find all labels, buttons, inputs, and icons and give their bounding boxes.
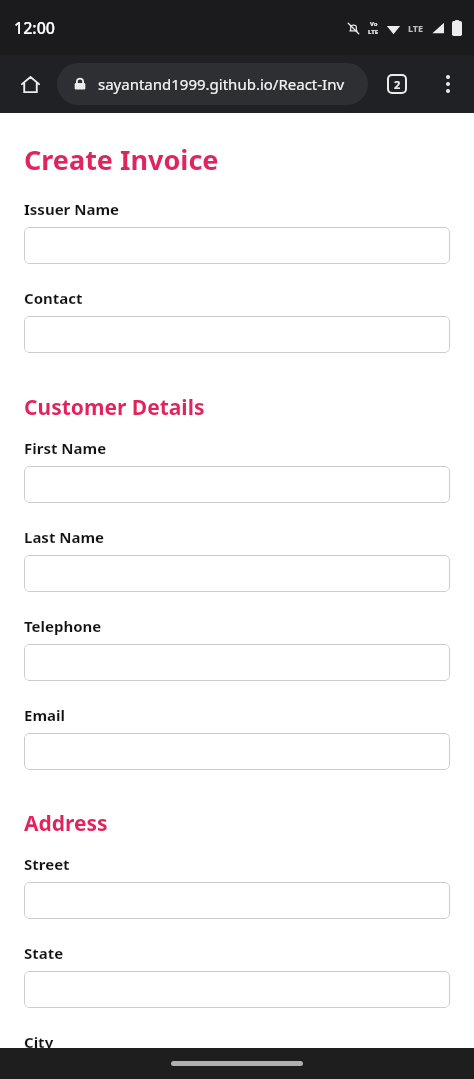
staticText: LTE [368, 28, 379, 36]
staticText: Email [24, 705, 65, 725]
button[interactable] [24, 316, 450, 353]
staticText: Last Name [24, 527, 105, 547]
staticText: Customer Details [24, 393, 205, 422]
staticText: LTE [408, 22, 424, 34]
button[interactable]: More options [428, 64, 468, 104]
button[interactable]: sayantand1999.github.io/React-Inv [57, 63, 368, 105]
staticText: State [24, 943, 64, 963]
button[interactable] [24, 555, 450, 592]
staticText: Street [24, 854, 70, 874]
button[interactable]: Tabs, 2 open [378, 65, 416, 103]
staticText: Vo [370, 20, 378, 28]
staticText: Telephone [24, 616, 102, 636]
staticText: Address [24, 809, 108, 838]
button[interactable] [24, 882, 450, 919]
staticText: First Name [24, 438, 107, 458]
button[interactable]: Home [10, 64, 50, 104]
staticText: Contact [24, 288, 83, 308]
button[interactable] [24, 971, 450, 1008]
staticText: sayantand1999.github.io/React-Inv [98, 74, 345, 94]
button[interactable] [24, 644, 450, 681]
staticText: Create Invoice [24, 141, 219, 178]
staticText: 12:00 [14, 17, 55, 39]
button[interactable] [24, 227, 450, 264]
staticText: City [24, 1032, 54, 1048]
staticText: Issuer Name [24, 199, 119, 219]
button[interactable] [24, 466, 450, 503]
staticText: 2 [394, 77, 401, 92]
button[interactable] [24, 733, 450, 770]
